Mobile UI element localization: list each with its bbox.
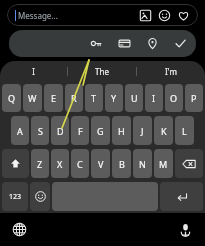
staticText: Z (37, 158, 43, 170)
staticText: G (97, 125, 104, 137)
button[interactable]: S (31, 116, 49, 145)
button[interactable]: Payment cards (118, 37, 131, 50)
button[interactable]: Z (31, 149, 49, 178)
staticText: Q (8, 92, 16, 104)
button[interactable]: I'm (137, 61, 205, 82)
staticText: C (77, 158, 83, 170)
staticText: 123 (9, 192, 22, 202)
button[interactable]: I (0, 61, 67, 82)
staticText: J (141, 125, 144, 137)
button[interactable]: Addresses (146, 37, 159, 50)
button[interactable]: H (112, 116, 131, 145)
button[interactable]: I (145, 84, 163, 112)
button[interactable]: Q (2, 84, 21, 112)
button[interactable]: G (91, 116, 110, 145)
button[interactable]: Passwords (90, 37, 103, 50)
staticText: S (38, 125, 43, 137)
staticText: Y (111, 92, 117, 104)
staticText: V (98, 158, 104, 170)
button[interactable]: R (65, 84, 83, 112)
button[interactable]: Shift (2, 149, 29, 178)
button[interactable]: L (175, 116, 194, 145)
button[interactable]: A (11, 116, 29, 145)
button[interactable]: O (165, 84, 183, 112)
staticText: O (170, 92, 178, 104)
staticText: Message... (18, 10, 58, 21)
button[interactable]: Confirm (174, 37, 187, 50)
button[interactable]: The (68, 61, 136, 82)
button[interactable]: V (91, 149, 110, 178)
staticText: A (17, 125, 23, 137)
staticText: X (57, 158, 63, 170)
staticText: R (71, 92, 77, 104)
button[interactable]: Voice input (178, 222, 193, 237)
button[interactable]: F (71, 116, 89, 145)
button[interactable]: N (133, 149, 152, 178)
button[interactable]: Insert image (139, 9, 152, 22)
staticText: P (191, 92, 197, 104)
button[interactable]: Change keyboard language (12, 222, 27, 237)
button[interactable]: 123 (2, 182, 28, 211)
staticText: I (32, 66, 35, 77)
button[interactable]: Like (177, 9, 190, 22)
button[interactable]: Enter (160, 182, 203, 211)
staticText: B (119, 158, 125, 170)
button[interactable]: D (51, 116, 69, 145)
staticText: L (182, 125, 187, 137)
button[interactable]: X (51, 149, 69, 178)
button[interactable]: J (133, 116, 152, 145)
staticText: T (91, 92, 97, 104)
staticText: W (28, 92, 37, 104)
button[interactable]: P (185, 84, 203, 112)
button[interactable]: T (85, 84, 103, 112)
staticText: K (161, 125, 167, 137)
staticText: E (51, 92, 57, 104)
button[interactable]: C (71, 149, 89, 178)
staticText: N (139, 158, 146, 170)
button[interactable]: B (112, 149, 131, 178)
staticText: U (131, 92, 138, 104)
staticText: M (159, 158, 168, 170)
button[interactable]: K (154, 116, 173, 145)
staticText: F (78, 125, 83, 137)
button[interactable]: Message... (7, 4, 198, 26)
button[interactable]: E (44, 84, 63, 112)
staticText: The (95, 66, 109, 77)
staticText: H (118, 125, 125, 137)
button[interactable]: Backspace (175, 149, 203, 178)
button[interactable]: U (125, 84, 143, 112)
button[interactable]: Sticker (158, 9, 171, 22)
button[interactable]: W (23, 84, 42, 112)
staticText: D (57, 125, 64, 137)
staticText: I'm (165, 66, 177, 77)
button[interactable]: Y (105, 84, 123, 112)
button[interactable]: M (154, 149, 173, 178)
button[interactable]: Emoji (30, 182, 50, 211)
staticText: I (152, 92, 156, 104)
